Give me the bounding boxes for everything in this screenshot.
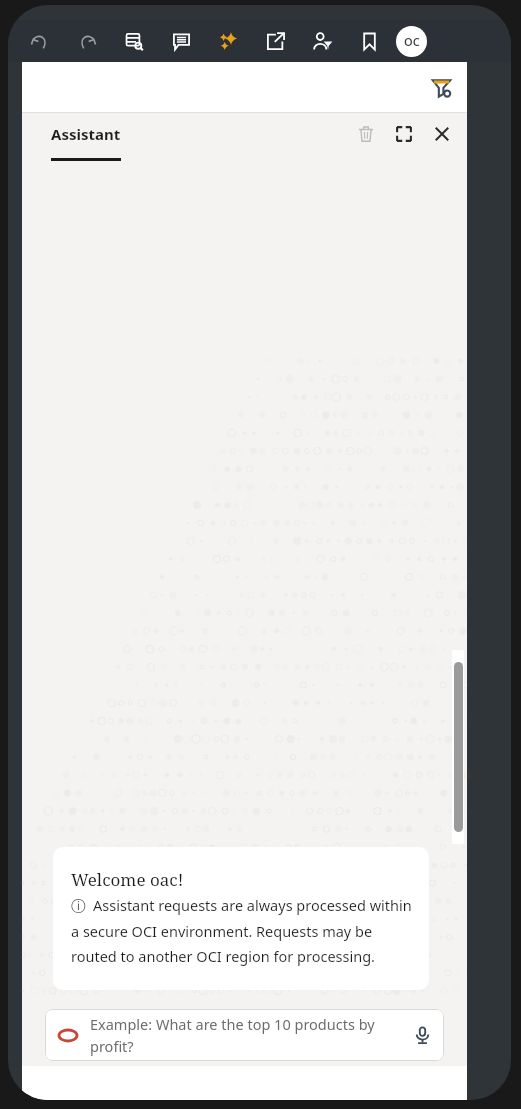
button[interactable]: Redo bbox=[74, 28, 100, 54]
staticText: Example: What are the top 10 products by… bbox=[90, 1014, 407, 1056]
staticText: Assistant bbox=[51, 124, 121, 144]
button[interactable]: Share bbox=[262, 28, 288, 54]
button[interactable]: Close bbox=[429, 121, 455, 147]
button[interactable]: Comments bbox=[168, 28, 194, 54]
button[interactable]: Expand bbox=[391, 121, 417, 147]
button[interactable]: Profile bbox=[396, 26, 427, 57]
staticText: Welcome oac! bbox=[71, 868, 184, 891]
staticText: ⓘ Assistant requests are always processe… bbox=[71, 895, 415, 966]
button[interactable]: Welcome oac! bbox=[53, 847, 429, 990]
button[interactable]: Filter bbox=[427, 73, 455, 101]
button[interactable]: Example: What are the top 10 products by… bbox=[45, 1009, 444, 1061]
button[interactable]: Bookmark bbox=[356, 28, 382, 54]
button[interactable]: Data set bbox=[121, 28, 147, 54]
button[interactable]: Collaborate bbox=[309, 28, 335, 54]
staticText: OC bbox=[404, 34, 420, 49]
button[interactable]: Undo bbox=[26, 28, 52, 54]
button[interactable]: Voice input bbox=[407, 1020, 437, 1050]
button[interactable]: Clear conversation bbox=[353, 121, 379, 147]
button[interactable]: Insights bbox=[215, 28, 241, 54]
